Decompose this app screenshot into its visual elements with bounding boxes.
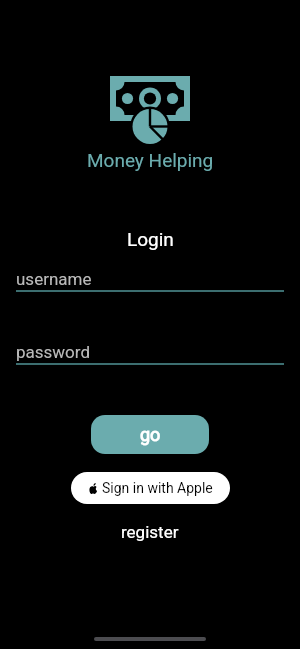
staticText: register: [121, 522, 179, 542]
button[interactable]: Sign in with Apple: [71, 472, 230, 504]
staticText: Sign in with Apple: [102, 480, 213, 496]
staticText: username: [16, 269, 92, 289]
staticText: password: [16, 342, 91, 362]
button[interactable]: go: [91, 415, 209, 454]
staticText: Money Helping: [87, 149, 214, 171]
staticText: Login: [127, 228, 174, 250]
button[interactable]: register: [111, 517, 189, 547]
staticText: go: [140, 424, 161, 445]
